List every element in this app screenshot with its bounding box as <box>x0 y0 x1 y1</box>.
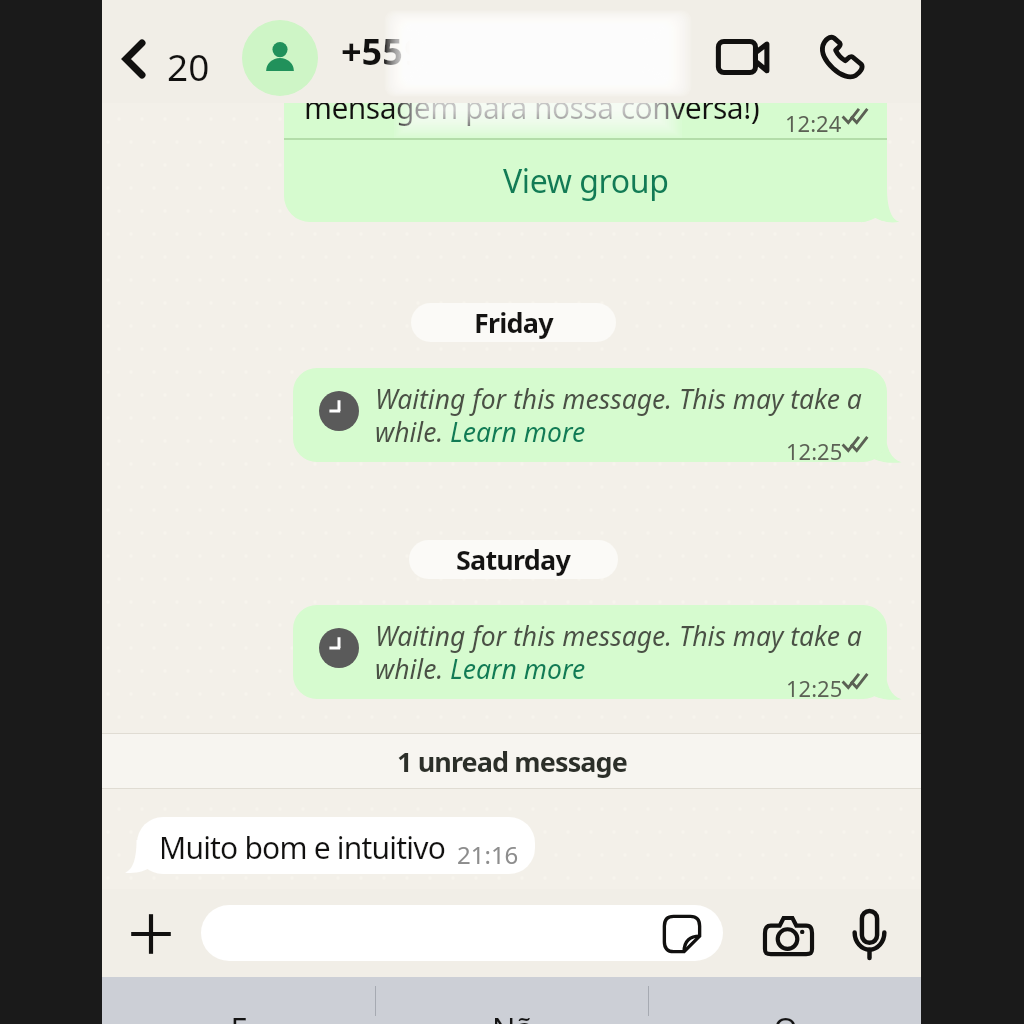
staticText: Friday <box>474 304 553 341</box>
staticText: Waiting for this message. This may take … <box>375 618 862 687</box>
staticText: Muito bom e intuitivo <box>159 827 445 868</box>
button[interactable]: Waiting for this message. This may take … <box>293 605 887 699</box>
button[interactable]: Saturday <box>409 540 618 579</box>
button[interactable]: Friday <box>411 303 616 342</box>
button[interactable]: Contact profile photo <box>242 20 318 96</box>
staticText: Nã <box>492 1007 533 1024</box>
button[interactable]: Attach <box>123 906 179 962</box>
staticText: 20 <box>167 41 210 91</box>
staticText: 12:24 <box>785 108 842 138</box>
staticText: Waiting for this message. This may take … <box>375 381 862 450</box>
staticText: 12:25 <box>786 673 843 703</box>
button[interactable]: Nã <box>376 977 648 1024</box>
staticText: Saturday <box>456 541 571 578</box>
button[interactable]: Voice call <box>809 24 875 90</box>
staticText: 12:25 <box>786 436 843 466</box>
button[interactable]: Message input <box>201 905 723 961</box>
button[interactable]: Video call <box>709 24 775 90</box>
staticText: 1 unread message <box>397 743 627 780</box>
button[interactable]: Back, 20 unread chats <box>114 0 224 103</box>
staticText: O <box>773 1007 798 1024</box>
button[interactable]: View group <box>284 140 887 222</box>
button[interactable]: Voice message <box>839 903 899 963</box>
staticText: 21:16 <box>457 838 519 871</box>
staticText: View group <box>503 159 669 203</box>
button[interactable]: Waiting for this message. This may take … <box>293 368 887 462</box>
staticText: E <box>230 1007 248 1024</box>
button[interactable]: Muito bom e intuitivo <box>137 817 535 874</box>
staticText: +55 <box>341 27 403 76</box>
staticText: mensagem para nossa conversa!) <box>304 103 760 128</box>
button[interactable]: E <box>102 977 375 1024</box>
button[interactable]: O <box>649 977 921 1024</box>
button[interactable]: Camera <box>758 904 818 964</box>
